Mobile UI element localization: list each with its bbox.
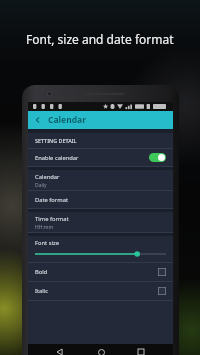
staticText: Daily [35,182,47,189]
staticText: Font, size and date format [26,31,174,47]
button[interactable]: Home [93,344,109,355]
button[interactable]: Font size slider [35,251,166,257]
button[interactable]: Date format [28,191,173,208]
staticText: Bold [35,268,48,276]
button[interactable]: Italic [28,282,173,300]
button[interactable]: Calendar [28,170,173,190]
staticText: HH:mm [35,224,54,231]
staticText: Calendar [35,173,60,181]
button[interactable]: Back [28,111,48,129]
staticText: Date format [35,196,69,204]
staticText: Calendar [48,114,86,126]
button[interactable]: Time format [28,212,173,232]
staticText: Italic [35,287,49,295]
button[interactable]: Enable calendar toggle [149,153,166,162]
button[interactable]: Back [52,344,68,355]
staticText: SETTING DETAIL [35,137,77,144]
button[interactable]: Bold [28,263,173,281]
staticText: Font size [35,239,59,247]
staticText: Time format [35,215,69,223]
button[interactable]: Enable calendar [28,149,173,166]
staticText: Enable calendar [35,154,79,162]
button[interactable]: Font size [28,236,173,262]
button[interactable]: Recents [133,344,149,355]
